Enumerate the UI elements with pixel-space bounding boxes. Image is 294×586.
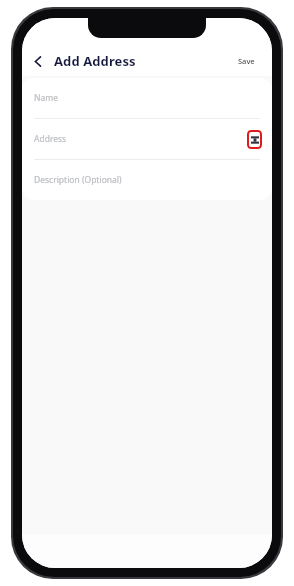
button[interactable]: Address [22, 119, 272, 159]
staticText: Add Address [54, 52, 136, 70]
staticText: Address [34, 133, 67, 145]
button[interactable]: Description (Optional) [22, 160, 272, 200]
button[interactable]: Name [22, 78, 272, 118]
button[interactable]: Pick address on map [247, 130, 262, 149]
button[interactable]: Save [231, 52, 262, 70]
staticText: Save [238, 56, 255, 66]
button[interactable]: Back [26, 49, 50, 73]
staticText: Description (Optional) [34, 174, 122, 186]
staticText: Name [34, 92, 58, 104]
